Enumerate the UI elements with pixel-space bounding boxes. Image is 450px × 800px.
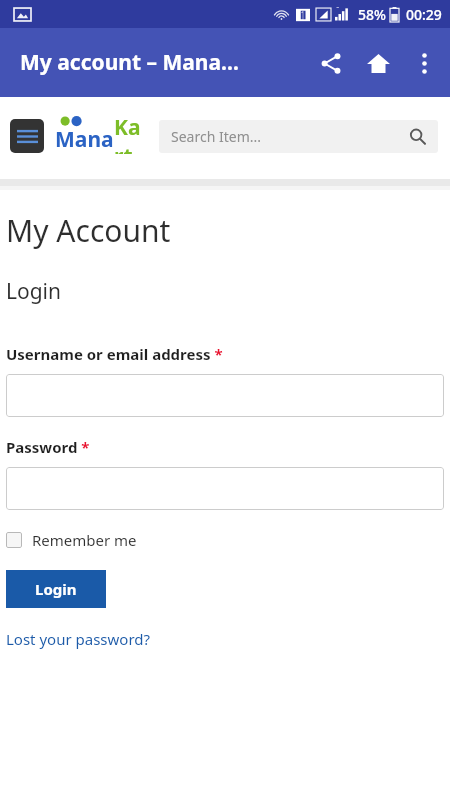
button[interactable]: Remember me (6, 530, 137, 550)
button[interactable]: ManaKart home (55, 113, 143, 159)
button[interactable] (6, 374, 444, 417)
staticText: Login (6, 277, 62, 306)
button[interactable]: Share (308, 40, 354, 86)
staticText: 00:29 (406, 5, 442, 24)
button[interactable]: Home (354, 39, 402, 87)
staticText: Password * (6, 437, 90, 457)
button[interactable]: Search Item... (159, 120, 438, 153)
staticText: Kart (114, 113, 143, 154)
staticText: Lost your password? (6, 629, 151, 649)
button[interactable]: Lost your password? (6, 629, 151, 649)
staticText: Remember me (32, 530, 137, 550)
button[interactable]: Login (6, 570, 106, 608)
staticText: Mana (55, 125, 114, 154)
button[interactable] (6, 467, 444, 510)
staticText: My Account (6, 210, 171, 251)
staticText: 58% (358, 5, 386, 24)
staticText: My account – Mana… (20, 48, 270, 77)
button[interactable]: Menu (10, 119, 44, 153)
staticText: Username or email address * (6, 344, 223, 364)
staticText: Login (35, 579, 77, 599)
staticText: Search Item... (171, 127, 261, 146)
button[interactable]: More options (402, 41, 446, 85)
